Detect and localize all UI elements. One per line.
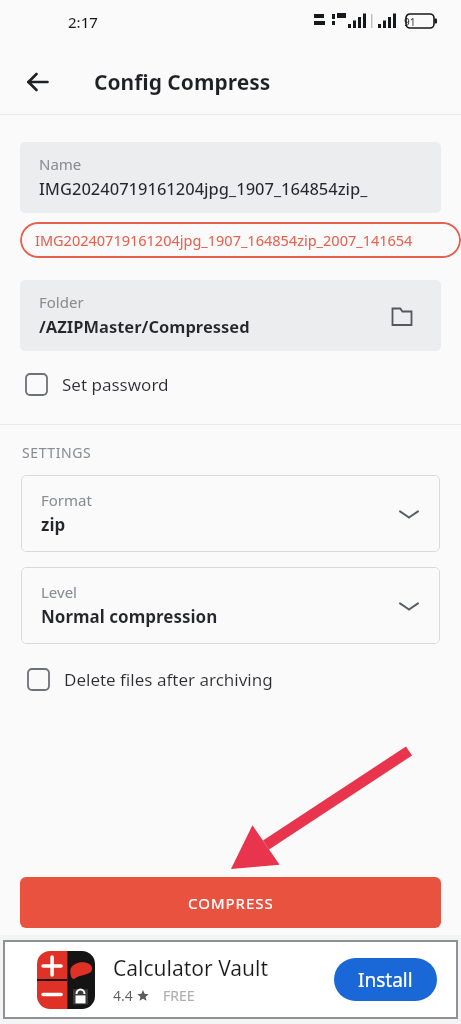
staticText: COMPRESS bbox=[188, 893, 274, 913]
button[interactable]: Level bbox=[21, 567, 440, 644]
staticText: 2:17 bbox=[68, 12, 98, 32]
staticText: Name bbox=[39, 154, 82, 174]
staticText: FREE bbox=[163, 986, 195, 1005]
staticText: Set password bbox=[62, 373, 169, 396]
button[interactable]: Format bbox=[21, 475, 440, 552]
staticText: SETTINGS bbox=[22, 443, 92, 462]
staticText: Calculator Vault bbox=[113, 954, 269, 983]
staticText: zip bbox=[41, 513, 66, 536]
staticText: 91 bbox=[404, 15, 416, 29]
button[interactable]: Calculator Vault bbox=[3, 940, 458, 1019]
staticText: 4.4 bbox=[113, 986, 133, 1005]
staticText: IMG20240719161204jpg_1907_164854zip_2007… bbox=[35, 230, 413, 250]
button[interactable]: Install bbox=[334, 958, 437, 1001]
staticText: Folder bbox=[39, 292, 84, 312]
staticText: Format bbox=[41, 490, 92, 510]
button[interactable]: Choose folder bbox=[384, 298, 420, 334]
button[interactable]: COMPRESS bbox=[20, 877, 441, 928]
button[interactable]: Name bbox=[20, 142, 441, 213]
staticText: Delete files after archiving bbox=[64, 668, 273, 691]
staticText: IMG20240719161204jpg_1907_164854zip_ bbox=[39, 177, 368, 199]
button[interactable]: Folder bbox=[20, 280, 441, 351]
button[interactable]: Delete files after archiving bbox=[0, 662, 461, 696]
staticText: /AZIPMaster/Compressed bbox=[39, 315, 250, 337]
staticText: Normal compression bbox=[41, 605, 218, 628]
button[interactable]: Set password bbox=[0, 367, 461, 401]
button[interactable]: Back bbox=[16, 60, 60, 104]
staticText: Config Compress bbox=[94, 68, 271, 97]
staticText: Level bbox=[41, 582, 77, 602]
staticText: Install bbox=[358, 967, 413, 993]
